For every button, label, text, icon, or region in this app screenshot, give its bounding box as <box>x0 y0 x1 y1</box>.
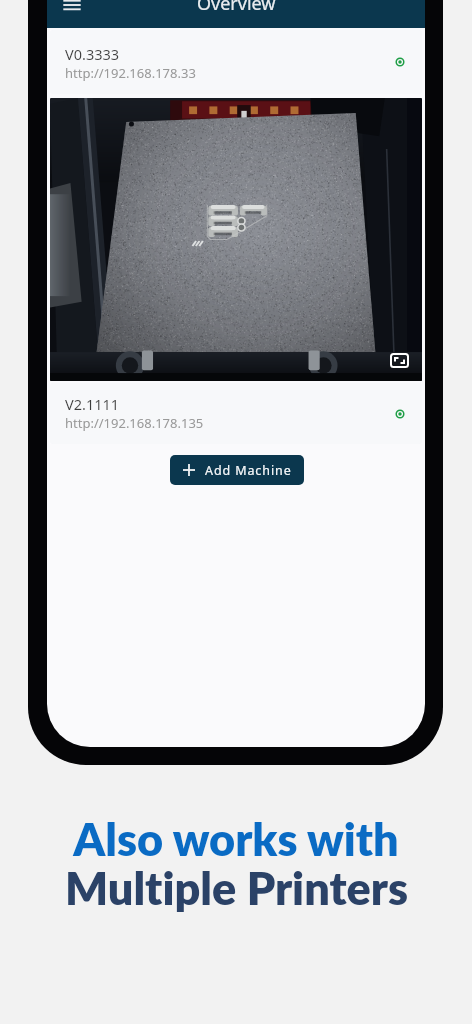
button[interactable]: Machine online <box>390 404 410 424</box>
staticText: Multiple Printers <box>65 861 408 915</box>
button[interactable]: Fullscreen <box>50 98 422 381</box>
staticText: Also works with <box>73 812 399 866</box>
button[interactable]: Machine online <box>390 52 410 72</box>
button[interactable]: Menu <box>59 0 85 16</box>
staticText: V2.1111 <box>65 394 120 414</box>
staticText: http://192.168.178.33 <box>65 64 196 82</box>
button[interactable]: Fullscreen <box>390 353 409 368</box>
staticText: Overview <box>197 0 276 16</box>
button[interactable]: Add Machine <box>170 455 304 485</box>
button[interactable]: V2.1111 <box>50 383 422 444</box>
button[interactable]: V0.3333 <box>50 30 422 94</box>
staticText: Add Machine <box>205 462 292 479</box>
staticText: V0.3333 <box>65 44 120 64</box>
staticText: http://192.168.178.135 <box>65 414 204 432</box>
